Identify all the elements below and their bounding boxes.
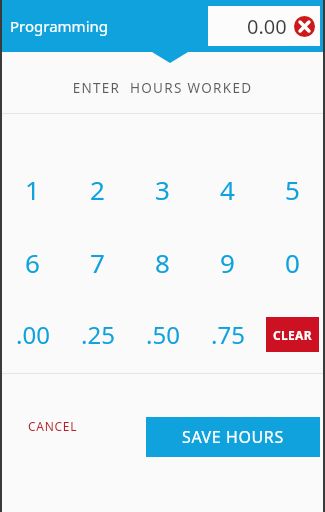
button[interactable]: 8 xyxy=(130,226,195,299)
staticText: CLEAR xyxy=(273,327,312,343)
staticText: Programming xyxy=(10,16,108,36)
button[interactable]: 9 xyxy=(195,226,260,299)
button[interactable]: .25 xyxy=(65,299,130,370)
button[interactable]: .50 xyxy=(130,299,195,370)
staticText: 2 xyxy=(90,172,105,207)
button[interactable]: 6 xyxy=(0,226,65,299)
button[interactable]: 4 xyxy=(195,153,260,226)
staticText: 1 xyxy=(25,172,40,207)
staticText: .25 xyxy=(81,318,115,351)
staticText: 0.00 xyxy=(247,13,287,40)
staticText: 9 xyxy=(220,245,235,280)
button[interactable]: 2 xyxy=(65,153,130,226)
staticText: 7 xyxy=(90,245,105,280)
staticText: ENTER HOURS WORKED xyxy=(0,79,325,97)
button[interactable]: 0.00 xyxy=(208,6,320,46)
button[interactable]: 5 xyxy=(260,153,325,226)
button[interactable]: 0 xyxy=(260,226,325,299)
button[interactable]: CLEAR xyxy=(266,317,319,352)
staticText: .50 xyxy=(146,318,180,351)
staticText: SAVE HOURS xyxy=(182,426,284,448)
button[interactable]: 7 xyxy=(65,226,130,299)
button[interactable]: SAVE HOURS xyxy=(146,417,320,457)
button[interactable]: CANCEL xyxy=(28,418,78,434)
staticText: .75 xyxy=(211,318,245,351)
staticText: CANCEL xyxy=(28,418,78,434)
staticText: .00 xyxy=(16,318,50,351)
staticText: 5 xyxy=(285,172,300,207)
button[interactable]: .75 xyxy=(195,299,260,370)
staticText: 3 xyxy=(155,172,170,207)
staticText: 0 xyxy=(285,245,300,280)
staticText: 6 xyxy=(25,245,40,280)
button[interactable]: .00 xyxy=(0,299,65,370)
button[interactable]: 3 xyxy=(130,153,195,226)
staticText: 4 xyxy=(220,172,235,207)
staticText: 8 xyxy=(155,245,170,280)
button[interactable]: Clear value xyxy=(294,16,315,37)
button[interactable]: 1 xyxy=(0,153,65,226)
